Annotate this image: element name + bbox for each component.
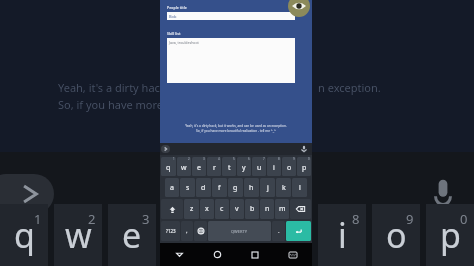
staticText: Bob: [169, 14, 177, 19]
button[interactable]: a: [165, 178, 179, 197]
staticText: g: [233, 183, 238, 193]
staticText: o: [386, 212, 407, 258]
button[interactable]: Recent apps: [236, 243, 274, 266]
staticText: w: [181, 163, 187, 173]
staticText: ,: [186, 227, 188, 235]
button[interactable]: h: [244, 178, 259, 197]
staticText: n: [265, 204, 270, 214]
button[interactable]: ?123: [161, 221, 180, 241]
staticText: 3: [203, 157, 205, 161]
button[interactable]: c: [215, 199, 229, 219]
staticText: r: [213, 163, 216, 173]
button[interactable]: Change keyboard language: [194, 221, 207, 241]
staticText: k: [282, 183, 286, 193]
staticText: p: [440, 212, 461, 258]
staticText: x: [205, 204, 209, 214]
button[interactable]: f: [212, 178, 227, 197]
button[interactable]: d: [196, 178, 211, 197]
staticText: n exception.: [318, 80, 381, 95]
button[interactable]: Bob: [167, 12, 295, 20]
staticText: 1: [34, 210, 42, 228]
button[interactable]: 9: [282, 157, 296, 176]
staticText: j: [267, 183, 269, 193]
staticText: 1: [173, 157, 175, 161]
staticText: Yeah, it's a dirty hack,: [58, 80, 169, 95]
staticText: 6: [248, 157, 250, 161]
staticText: q: [14, 212, 35, 258]
button[interactable]: v: [230, 199, 244, 219]
staticText: s: [186, 183, 190, 193]
button[interactable]: Delete: [290, 199, 311, 219]
button[interactable]: Period: [272, 221, 285, 241]
button[interactable]: Comma: [181, 221, 193, 241]
button[interactable]: x: [200, 199, 214, 219]
button[interactable]: Switch keyboard: [274, 243, 312, 266]
staticText: 7: [263, 157, 265, 161]
staticText: 9: [293, 157, 295, 161]
staticText: Yeah, it's a dirty hack, but it works, a…: [185, 124, 287, 128]
staticText: 5: [233, 157, 235, 161]
staticText: People title: [167, 5, 187, 10]
button[interactable]: b: [245, 199, 259, 219]
button[interactable]: l: [292, 178, 307, 197]
staticText: z: [190, 204, 194, 214]
button[interactable]: Toggle overlay visibility: [288, 0, 310, 17]
staticText: 4: [218, 157, 220, 161]
button[interactable]: Shift: [161, 199, 183, 219]
button[interactable]: 7: [252, 157, 266, 176]
button[interactable]: j: [260, 178, 275, 197]
button[interactable]: 8: [267, 157, 281, 176]
staticText: d: [201, 183, 206, 193]
staticText: f: [218, 183, 221, 193]
staticText: 9: [406, 210, 414, 228]
button[interactable]: Enter: [286, 221, 311, 241]
button[interactable]: 6: [237, 157, 251, 176]
staticText: 2: [188, 157, 190, 161]
button[interactable]: z: [184, 199, 199, 219]
staticText: 3: [142, 210, 150, 228]
button[interactable]: 4: [207, 157, 221, 176]
staticText: o: [287, 163, 292, 173]
staticText: m: [279, 204, 286, 214]
staticText: ?123: [166, 228, 176, 234]
button[interactable]: Home: [198, 243, 236, 266]
staticText: u: [257, 163, 262, 173]
button[interactable]: Back: [160, 243, 198, 266]
staticText: e: [197, 163, 201, 173]
staticText: i: [338, 212, 347, 258]
button[interactable]: 0: [297, 157, 311, 176]
staticText: c: [220, 204, 224, 214]
staticText: y: [242, 163, 246, 173]
button[interactable]: n: [260, 199, 274, 219]
button[interactable]: g: [228, 178, 243, 197]
button[interactable]: More suggestions: [161, 145, 170, 153]
staticText: q: [166, 163, 171, 173]
button[interactable]: QWERTY: [208, 221, 271, 241]
staticText: v: [235, 204, 239, 214]
staticText: w: [65, 212, 92, 258]
staticText: Skill list: [167, 31, 181, 36]
staticText: e: [122, 212, 142, 258]
staticText: b: [250, 204, 255, 214]
staticText: .: [278, 227, 280, 235]
button[interactable]: 3: [192, 157, 206, 176]
staticText: 0: [460, 210, 468, 228]
staticText: 8: [352, 210, 360, 228]
button[interactable]: k: [276, 178, 291, 197]
staticText: 2: [88, 210, 96, 228]
staticText: i: [273, 163, 275, 173]
button[interactable]: s: [180, 178, 195, 197]
staticText: a: [170, 183, 174, 193]
staticText: h: [249, 183, 254, 193]
button[interactable]: 2: [177, 157, 191, 176]
staticText: 0: [308, 157, 310, 161]
staticText: l: [299, 183, 301, 193]
button[interactable]: 1: [161, 157, 176, 176]
staticText: So, if you have more: [58, 97, 163, 112]
button[interactable]: Voice input: [300, 145, 308, 153]
staticText: So, if you have more beautiful realizati…: [196, 129, 276, 133]
button[interactable]: 5: [222, 157, 236, 176]
button[interactable]: m: [275, 199, 289, 219]
button[interactable]: Java, troubleshoot: [167, 38, 295, 83]
staticText: t: [228, 163, 231, 173]
